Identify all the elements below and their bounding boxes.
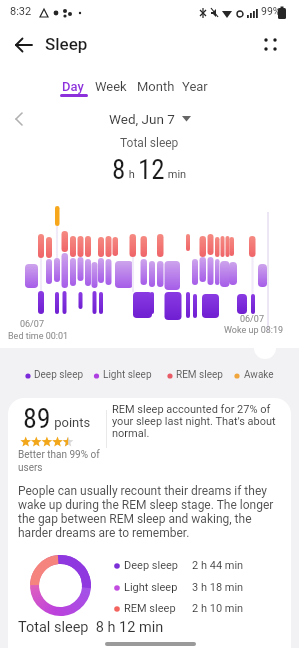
staticText: 06/07	[240, 314, 264, 325]
staticText: Woke up 08:19	[224, 325, 284, 336]
staticText: Awake	[244, 369, 274, 381]
staticText: Deep sleep	[124, 559, 178, 572]
staticText: Light sleep	[103, 369, 152, 381]
staticText: 06/07	[20, 319, 44, 330]
staticText: 2 h 10 min	[192, 602, 244, 615]
staticText: 8	[112, 154, 126, 186]
staticText: Week	[95, 79, 127, 94]
staticText: 8:32	[10, 5, 32, 18]
staticText: 2 h 44 min	[192, 559, 244, 572]
button[interactable]: Week	[93, 77, 133, 99]
button[interactable]: Year	[180, 77, 216, 99]
button[interactable]	[8, 32, 42, 58]
staticText: REM sleep	[124, 602, 176, 615]
button[interactable]: Day	[56, 77, 94, 99]
button[interactable]: Wed, Jun 7	[0, 109, 299, 129]
staticText: min	[165, 168, 187, 181]
staticText: points	[51, 415, 91, 430]
staticText: Light sleep	[124, 581, 178, 594]
staticText: Deep sleep	[34, 369, 84, 381]
staticText: Total sleep 8 h 12 min	[18, 619, 164, 636]
staticText: Sleep	[45, 34, 88, 54]
staticText: REM sleep	[176, 369, 223, 381]
staticText: REM sleep accounted for 27% of your slee…	[112, 403, 276, 440]
staticText: 99%	[261, 5, 281, 17]
staticText: Year	[182, 79, 208, 94]
staticText: Month	[137, 79, 175, 94]
button[interactable]	[258, 32, 284, 58]
staticText: Better than 99% of	[18, 449, 100, 461]
staticText: h	[126, 168, 138, 181]
staticText: 12	[138, 154, 165, 186]
staticText: Bed time 00:01	[8, 331, 69, 342]
staticText: 3 h 18 min	[192, 581, 244, 594]
button[interactable]	[8, 106, 32, 132]
button[interactable]: Month	[134, 77, 180, 99]
staticText: People can usually recount their dreams …	[18, 484, 274, 540]
staticText: Wed, Jun 7	[109, 111, 175, 127]
staticText: Total sleep	[120, 136, 179, 150]
staticText: users	[18, 462, 43, 474]
staticText: Day	[62, 79, 84, 94]
staticText: 89	[23, 402, 51, 435]
